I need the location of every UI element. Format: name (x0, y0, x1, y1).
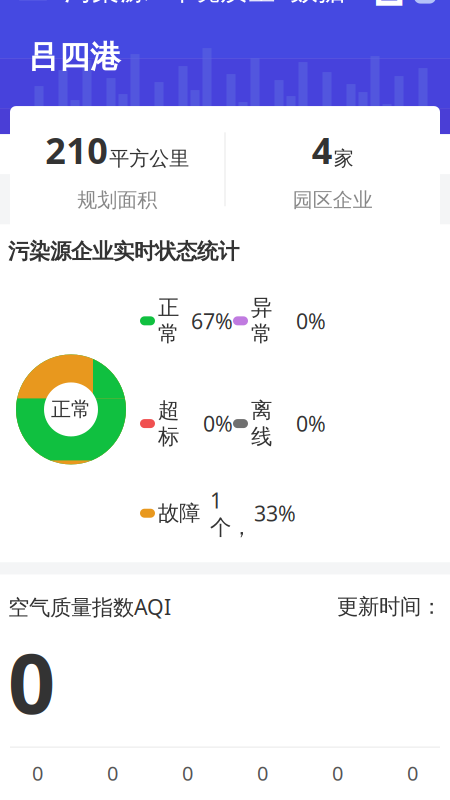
staticText: 园区企业 (293, 188, 373, 212)
staticText: 0 (407, 760, 418, 786)
staticText: 污染源企业实时状态统计 (8, 238, 239, 264)
staticText: 0 (182, 760, 193, 786)
staticText: 异常 (251, 295, 272, 347)
staticText: 0 (107, 760, 118, 786)
staticText: 0 (32, 760, 43, 786)
staticText: 规划面积 (77, 188, 157, 212)
staticText: 离线 (251, 397, 272, 450)
staticText: 33% (254, 499, 296, 527)
staticText: 环境质量 (164, 0, 276, 7)
button[interactable]: 环境质量 (156, 0, 284, 15)
staticText: 平方公里 (109, 146, 189, 171)
staticText: 67% (191, 307, 233, 335)
staticText: 0 (332, 760, 343, 786)
staticText: 0% (296, 409, 326, 438)
staticText: 更新时间： (337, 594, 442, 620)
staticText: 0% (203, 409, 233, 438)
staticText: 空气质量指数AQI (8, 592, 171, 621)
button[interactable]: 数据 (284, 0, 352, 15)
staticText: ⌂ (373, 0, 405, 16)
staticText: 数据 (290, 0, 346, 7)
staticText: 210 (45, 126, 108, 174)
staticText: 1个， (210, 486, 252, 540)
staticText: 家 (334, 146, 354, 171)
staticText: 污染源 (64, 0, 148, 7)
staticText: 吕四港 (28, 38, 121, 76)
button[interactable]: 我的 (406, 0, 440, 5)
staticText: 4 (312, 126, 333, 174)
staticText: 正常 (158, 295, 179, 347)
staticText: 0 (8, 627, 55, 737)
staticText: 正常 (51, 397, 91, 422)
staticText: 超标 (158, 397, 179, 450)
staticText: 故障 (158, 500, 200, 526)
staticText: 0 (257, 760, 268, 786)
button[interactable]: 首页 (372, 0, 406, 7)
staticText: 0% (296, 307, 326, 335)
button[interactable]: 污染源 (56, 0, 156, 15)
